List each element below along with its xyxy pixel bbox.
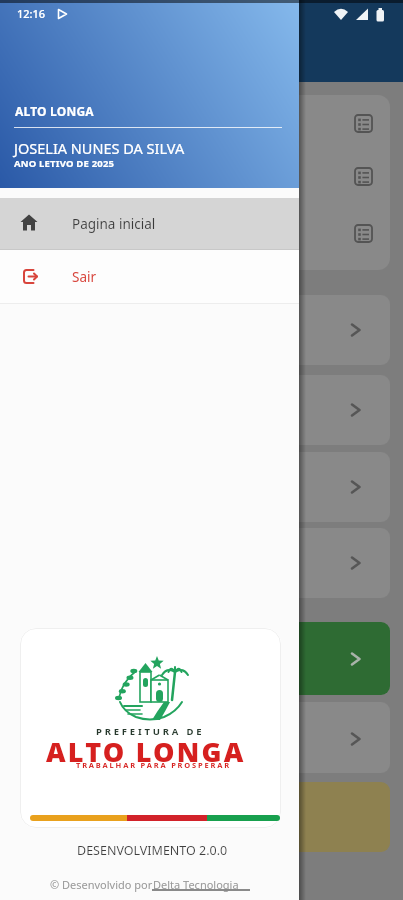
- button[interactable]: Delta Tecnologia: [153, 877, 239, 892]
- staticText: 12:16: [17, 6, 46, 21]
- staticText: PREFEITURA DE: [96, 725, 205, 738]
- button[interactable]: [0, 198, 299, 249]
- button[interactable]: [13, 95, 390, 270]
- staticText: Pagina inicial: [72, 215, 156, 233]
- staticText: DESENVOLVIMENTO 2.0.0: [77, 842, 228, 859]
- button[interactable]: [13, 452, 390, 522]
- staticText: ALTO LONGA: [46, 733, 246, 770]
- button[interactable]: [13, 375, 390, 445]
- staticText: ALTO LONGA: [15, 103, 94, 119]
- staticText: Sair: [72, 268, 97, 286]
- staticText: TRABALHAR PARA PROSPERAR: [76, 760, 231, 770]
- button[interactable]: [13, 782, 390, 852]
- staticText: © Desenvolvido por: [50, 877, 156, 892]
- button[interactable]: [13, 528, 390, 598]
- button[interactable]: [13, 295, 390, 365]
- staticText: JOSELIA NUNES DA SILVA: [14, 138, 185, 158]
- staticText: ANO LETIVO DE 2025: [14, 157, 115, 170]
- button[interactable]: [13, 702, 390, 773]
- button[interactable]: [0, 250, 299, 303]
- button[interactable]: [13, 622, 390, 695]
